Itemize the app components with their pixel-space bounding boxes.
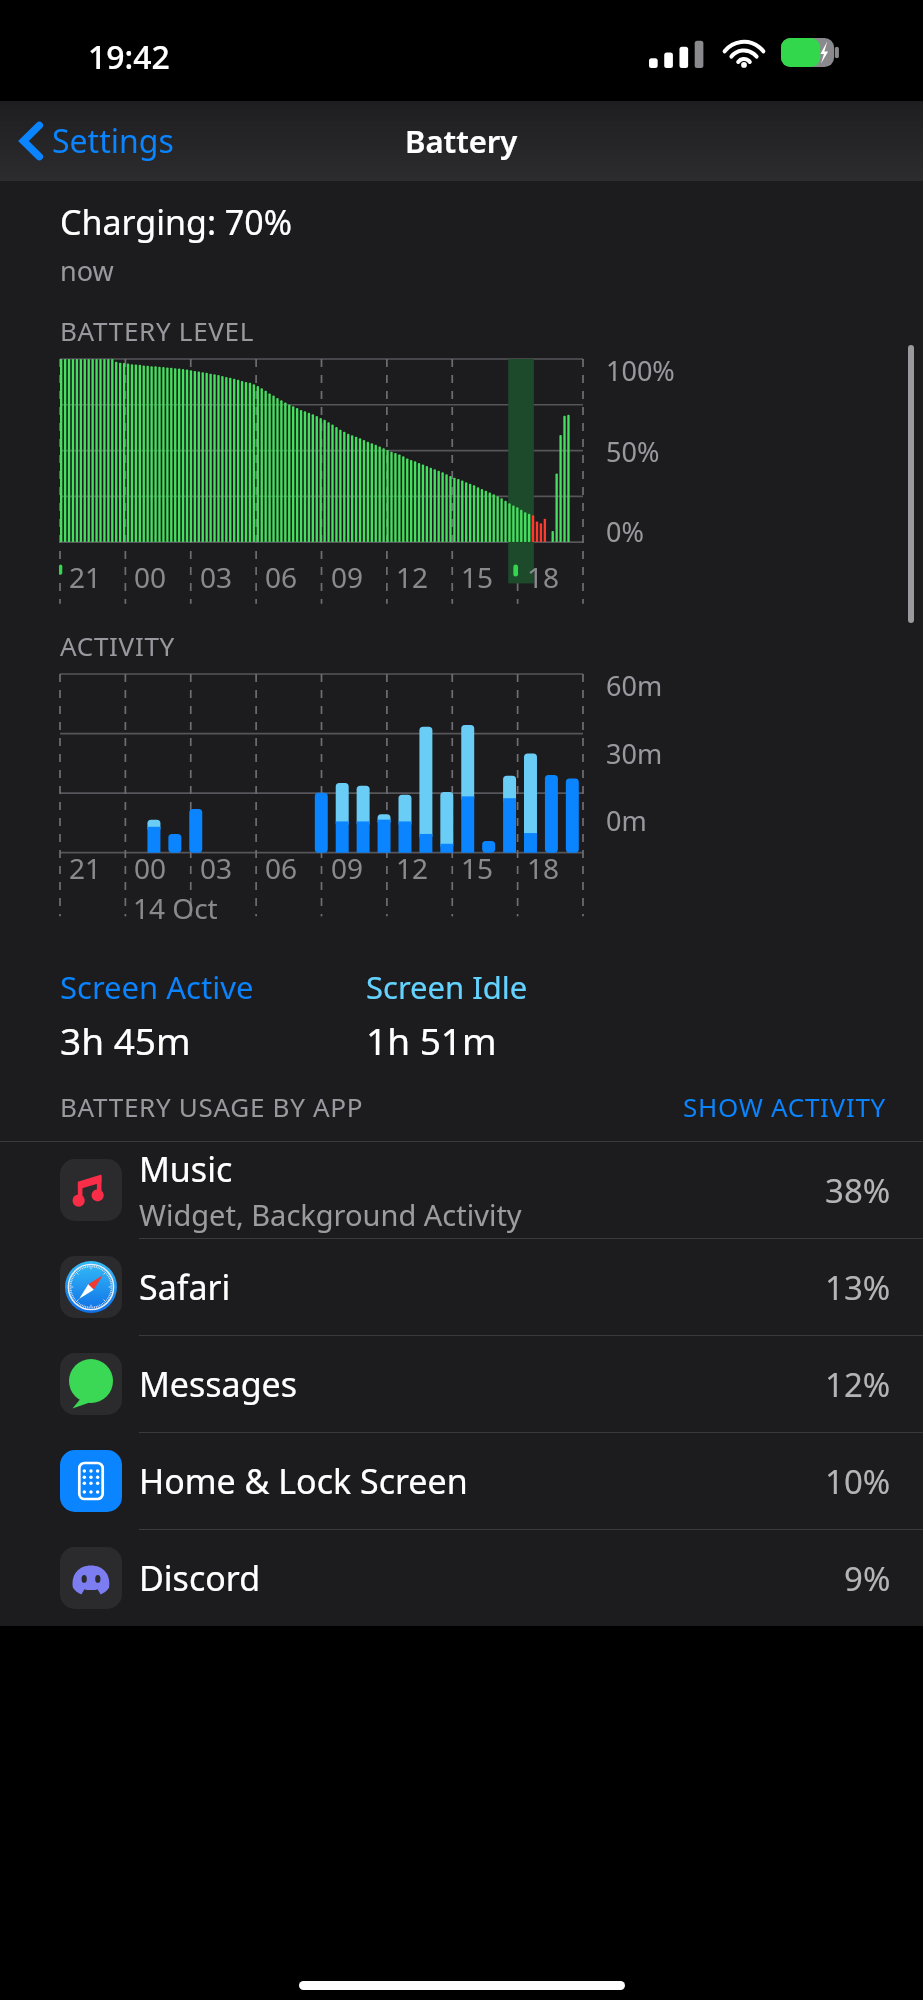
staticText: 03 — [200, 849, 233, 887]
staticText: SHOW ACTIVITY — [683, 1089, 887, 1124]
button[interactable]: Music — [0, 1142, 923, 1238]
staticText: 03 — [200, 558, 233, 596]
button[interactable]: Discord — [0, 1530, 923, 1626]
staticText: 15 — [461, 558, 494, 596]
staticText: Home & Lock Screen — [139, 1458, 468, 1504]
button[interactable]: Messages — [0, 1336, 923, 1432]
staticText: Screen Idle — [366, 966, 528, 1008]
staticText: 0% — [606, 513, 644, 550]
staticText: Safari — [139, 1264, 231, 1310]
staticText: 06 — [265, 558, 298, 596]
staticText: Music — [139, 1146, 233, 1192]
staticText: 38% — [825, 1168, 891, 1213]
staticText: 13% — [825, 1265, 891, 1310]
staticText: 00 — [134, 558, 167, 596]
staticText: 1h 51m — [366, 1015, 497, 1065]
staticText: 10% — [825, 1459, 891, 1504]
staticText: 15 — [461, 849, 494, 887]
staticText: Screen Active — [60, 966, 254, 1008]
staticText: ACTIVITY — [60, 628, 175, 663]
staticText: Messages — [139, 1361, 298, 1407]
staticText: 09 — [331, 849, 364, 887]
staticText: now — [60, 252, 114, 289]
staticText: 09 — [331, 558, 364, 596]
staticText: 19:42 — [88, 35, 170, 79]
staticText: 12 — [396, 558, 429, 596]
staticText: Settings — [52, 119, 174, 163]
staticText: 21 — [69, 849, 102, 887]
staticText: BATTERY LEVEL — [60, 313, 255, 348]
staticText: 3h 45m — [60, 1015, 191, 1065]
button[interactable]: Home & Lock Screen — [0, 1433, 923, 1529]
button[interactable]: Back — [14, 110, 180, 172]
staticText: 14 Oct — [133, 889, 218, 927]
staticText: 12 — [396, 849, 429, 887]
staticText: 60m — [606, 667, 663, 704]
staticText: 30m — [606, 735, 663, 772]
staticText: BATTERY USAGE BY APP — [60, 1089, 364, 1124]
button[interactable]: SHOW ACTIVITY — [679, 1085, 891, 1128]
staticText: 06 — [265, 849, 298, 887]
staticText: Charging: 70% — [60, 199, 292, 245]
button[interactable]: Safari — [0, 1239, 923, 1335]
staticText: Widget, Background Activity — [139, 1195, 522, 1234]
staticText: 18 — [527, 558, 560, 596]
staticText: 0m — [606, 802, 647, 839]
staticText: 12% — [825, 1362, 891, 1407]
other: Back — [20, 121, 43, 161]
staticText: 00 — [134, 849, 167, 887]
staticText: Discord — [139, 1555, 261, 1601]
staticText: 18 — [527, 849, 560, 887]
staticText: Battery — [405, 120, 518, 162]
staticText: 50% — [606, 433, 660, 470]
staticText: 9% — [844, 1556, 891, 1601]
staticText: 100% — [606, 352, 675, 389]
staticText: 21 — [69, 558, 102, 596]
